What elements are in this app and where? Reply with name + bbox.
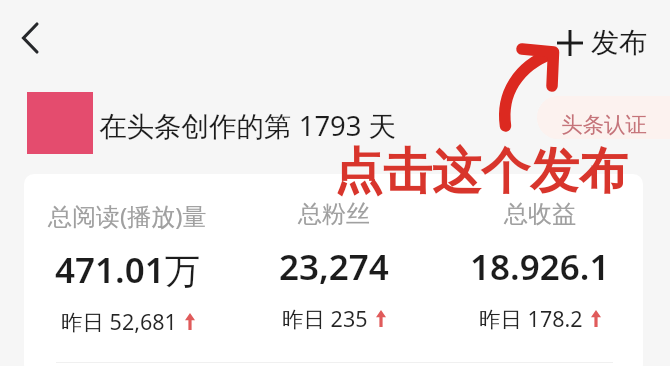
- staticText: 总收益: [504, 199, 576, 229]
- button[interactable]: 总收益: [437, 199, 643, 333]
- staticText: 总阅读(播放)量: [48, 199, 207, 232]
- staticText: 昨日 52,681: [61, 307, 177, 336]
- button[interactable]: 头条认证: [537, 96, 670, 139]
- button[interactable]: Back: [6, 14, 54, 62]
- button[interactable]: 总粉丝: [231, 199, 437, 333]
- staticText: 在头条创作的第 1793 天: [99, 107, 397, 145]
- staticText: 发布: [591, 25, 647, 60]
- staticText: 471.01万: [55, 246, 200, 294]
- staticText: 总粉丝: [298, 199, 370, 229]
- staticText: 昨日 178.2: [479, 304, 583, 333]
- button[interactable]: 总阅读(播放)量: [24, 199, 231, 336]
- staticText: 点击这个发布: [334, 141, 628, 203]
- button[interactable]: 发布: [554, 16, 647, 64]
- staticText: 18.926.1: [470, 243, 610, 291]
- staticText: 头条认证: [561, 111, 647, 138]
- staticText: 昨日 235: [282, 304, 368, 333]
- staticText: 23,274: [279, 243, 389, 291]
